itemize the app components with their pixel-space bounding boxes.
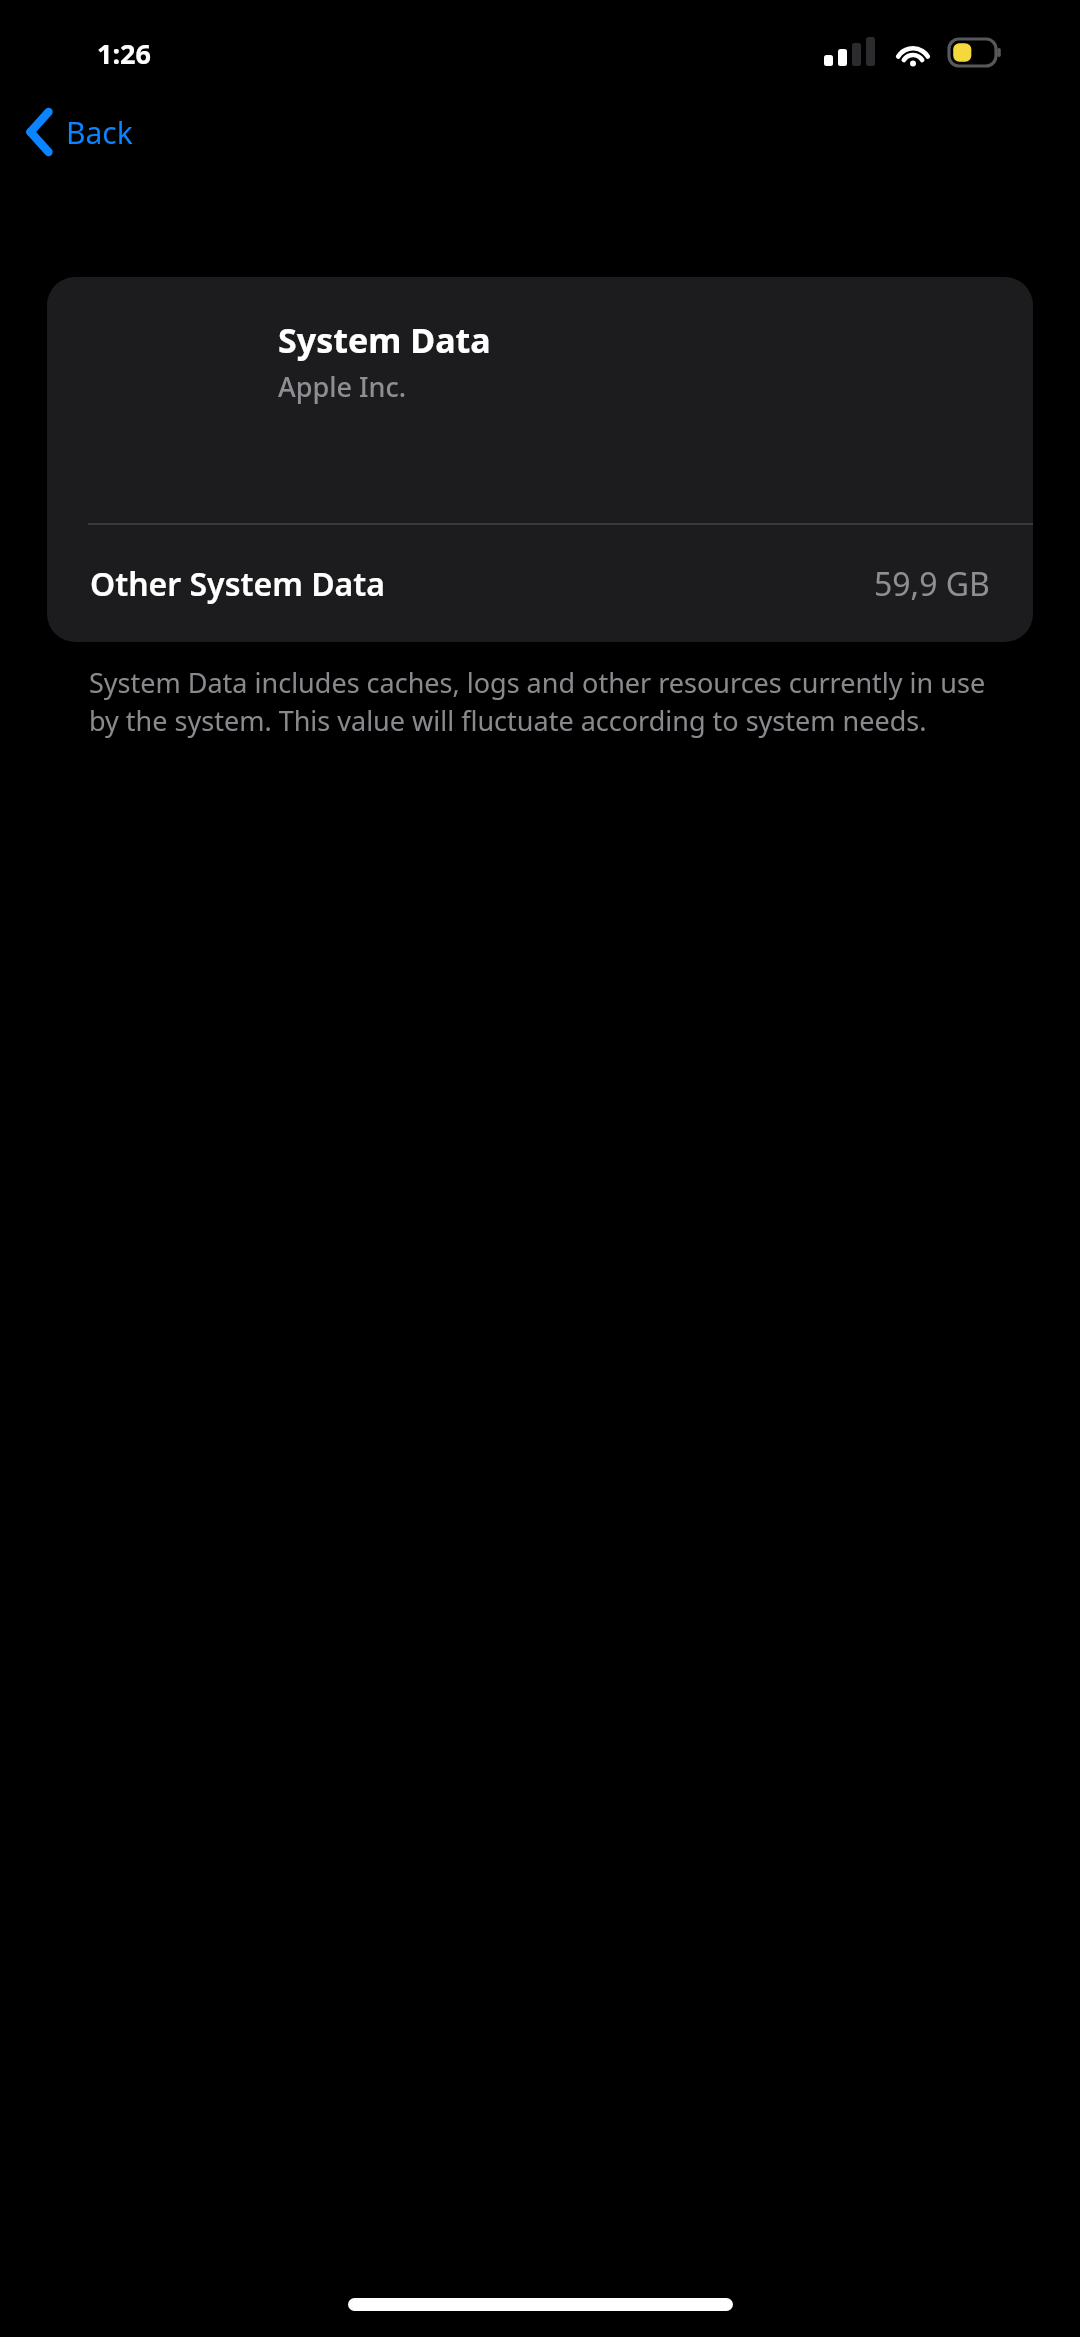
button[interactable]: Back [18,100,147,164]
staticText: System Data [278,317,491,363]
staticText: 59,9 GB [874,562,990,606]
staticText: Apple Inc. [278,368,407,405]
staticText: 1:26 [97,35,151,72]
staticText: System Data includes caches, logs and ot… [89,664,1002,739]
staticText: Back [66,112,133,153]
button[interactable]: Other System Data [47,525,1033,642]
staticText: Other System Data [90,562,386,606]
